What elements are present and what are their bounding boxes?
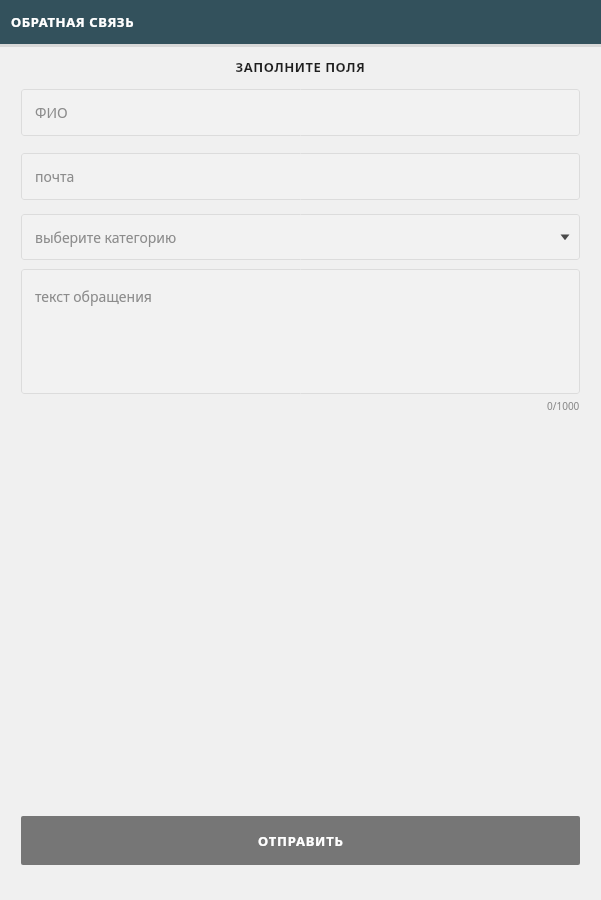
button[interactable]: ОТПРАВИТЬ xyxy=(21,816,580,865)
staticText: ЗАПОЛНИТЕ ПОЛЯ xyxy=(0,58,601,76)
button[interactable]: выберите категорию xyxy=(21,214,580,260)
button[interactable]: ФИО xyxy=(21,89,580,136)
button[interactable]: текст обращения xyxy=(21,269,580,394)
staticText: текст обращения xyxy=(35,287,152,306)
button[interactable]: почта xyxy=(21,153,580,200)
staticText: ОТПРАВИТЬ xyxy=(258,832,344,850)
staticText: ОБРАТНАЯ СВЯЗЬ xyxy=(11,13,135,31)
other: Открыть список категорий xyxy=(558,230,572,244)
staticText: выберите категорию xyxy=(35,228,177,247)
staticText: почта xyxy=(35,167,75,186)
staticText: 0/1000 xyxy=(547,399,580,413)
staticText: ФИО xyxy=(35,103,68,122)
